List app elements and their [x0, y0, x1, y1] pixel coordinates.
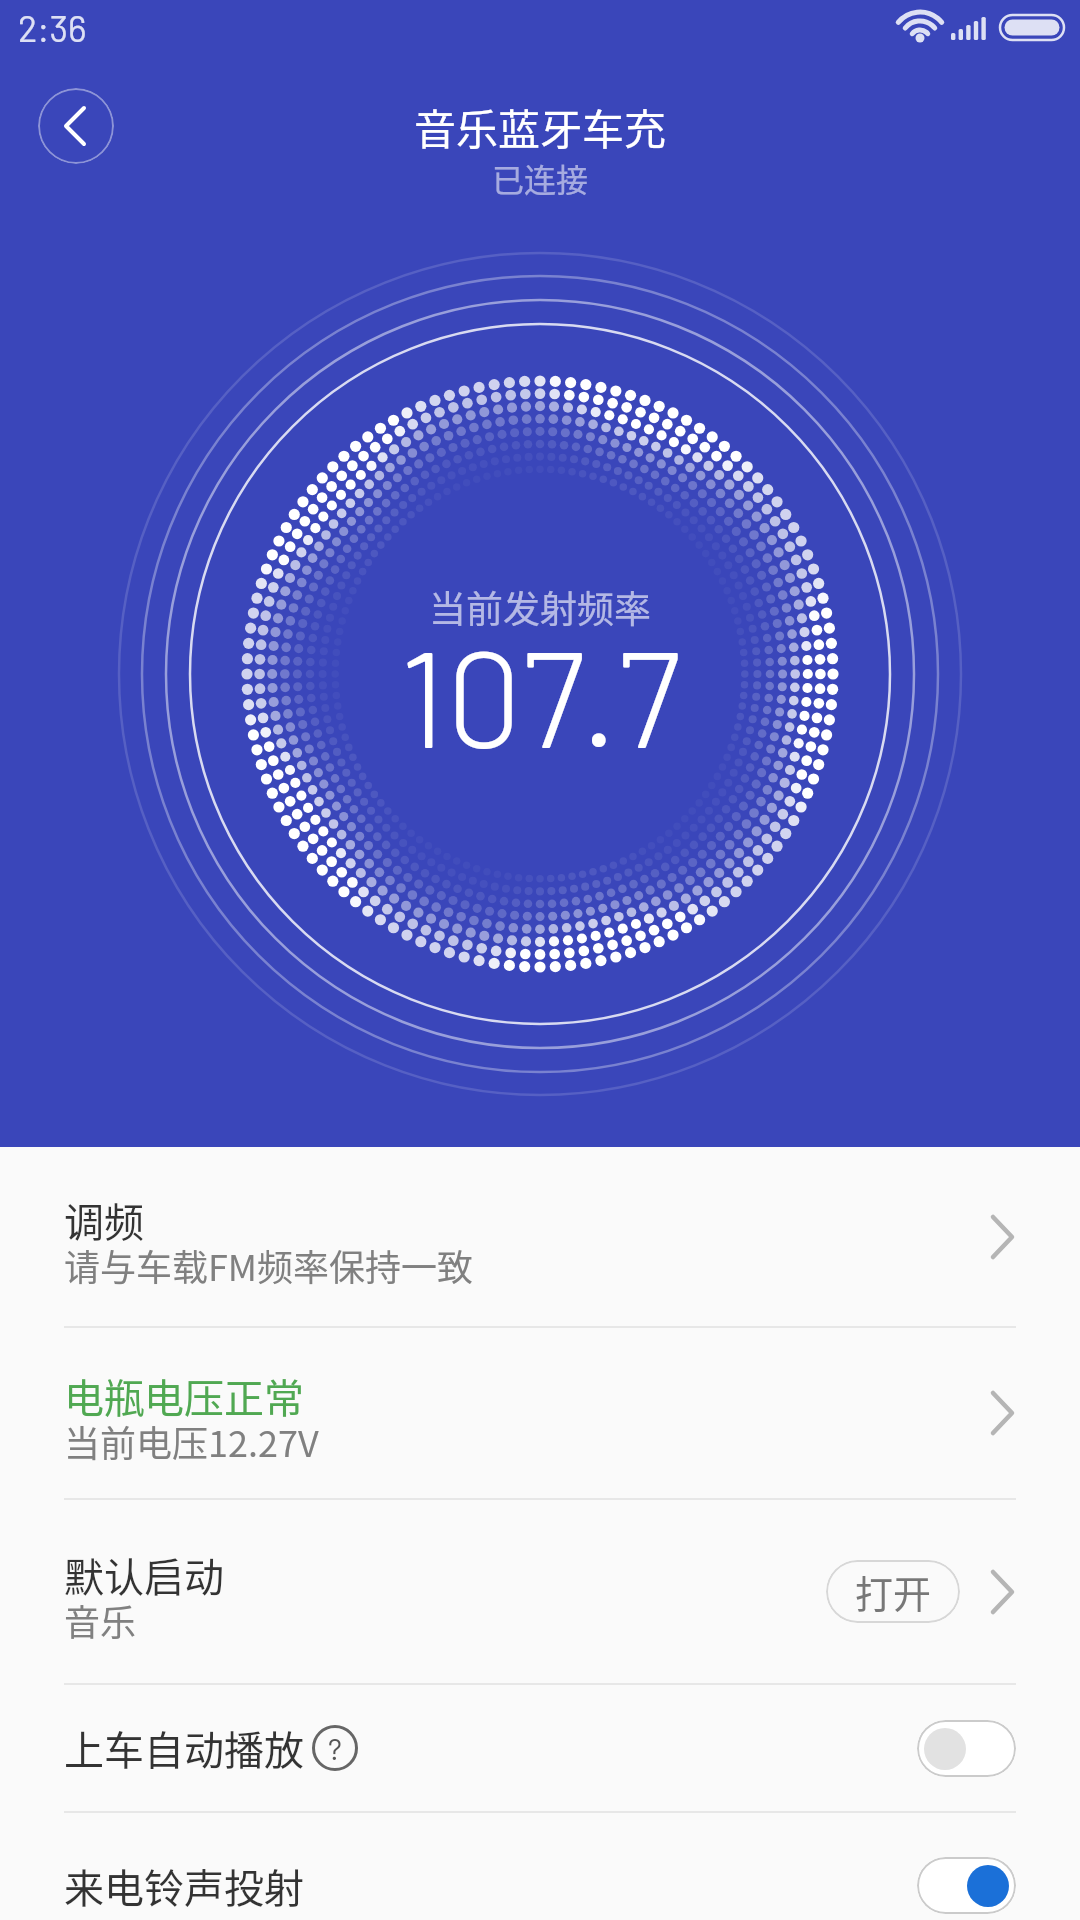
button[interactable]: 调频 [0, 1147, 1080, 1326]
staticText: 音乐蓝牙车充 [414, 96, 667, 157]
button[interactable]: 打开 [826, 1560, 960, 1623]
staticText: 调频 [64, 1191, 144, 1249]
staticText: 电瓶电压正常 [64, 1367, 304, 1425]
staticText: 音乐 [64, 1594, 137, 1646]
staticText: ? [328, 1730, 342, 1766]
staticText: 2:36 [18, 6, 87, 49]
button[interactable] [917, 1857, 1016, 1914]
staticText: 当前电压12.27V [64, 1415, 319, 1467]
staticText: 默认启动 [64, 1546, 224, 1604]
button[interactable]: 默认启动 [0, 1500, 1080, 1683]
button[interactable] [38, 88, 114, 164]
staticText: 107.7 [399, 613, 681, 775]
button[interactable] [917, 1720, 1016, 1777]
button[interactable]: 上车自动播放 [0, 1685, 1080, 1811]
button[interactable]: 电瓶电压正常 [0, 1328, 1080, 1498]
staticText: 来电铃声投射 [64, 1857, 304, 1915]
staticText: 打开 [855, 1564, 932, 1619]
staticText: 请与车载FM频率保持一致 [64, 1239, 474, 1291]
staticText: 当前发射频率 [429, 580, 651, 634]
staticText: 上车自动播放 [64, 1719, 304, 1777]
button[interactable]: 来电铃声投射 [0, 1832, 1080, 1920]
staticText: 已连接 [492, 155, 589, 201]
